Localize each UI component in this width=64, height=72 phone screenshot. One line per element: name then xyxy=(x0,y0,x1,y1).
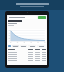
button[interactable] xyxy=(20,45,27,47)
button[interactable] xyxy=(8,56,46,57)
button[interactable] xyxy=(8,54,46,55)
button[interactable] xyxy=(12,45,19,47)
button[interactable] xyxy=(8,29,46,44)
button[interactable]: Filter xyxy=(8,45,11,47)
button[interactable] xyxy=(8,16,37,19)
button[interactable] xyxy=(8,60,46,61)
button[interactable] xyxy=(37,45,45,47)
button[interactable] xyxy=(28,45,36,47)
button[interactable] xyxy=(8,49,46,50)
button[interactable] xyxy=(8,58,46,59)
button[interactable] xyxy=(8,52,46,53)
button[interactable]: Primary action xyxy=(38,16,46,19)
